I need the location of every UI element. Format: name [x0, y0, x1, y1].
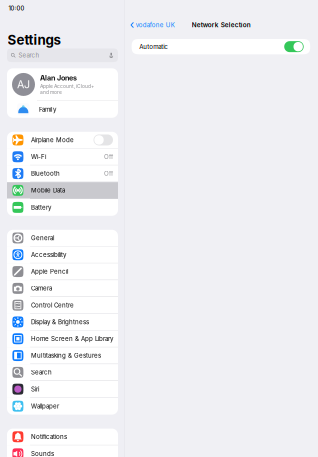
button[interactable]: Mobile Data	[7, 182, 118, 199]
staticText: Bluetooth	[31, 170, 60, 177]
button[interactable]: vodafone UK	[124, 18, 175, 32]
staticText: Off	[104, 170, 113, 177]
staticText: Mobile Data	[31, 187, 65, 194]
staticText: Multitasking & Gestures	[31, 352, 101, 359]
staticText: vodafone UK	[136, 21, 175, 29]
button[interactable]: Search	[7, 364, 118, 381]
button[interactable]: Battery	[7, 199, 118, 216]
button[interactable]: Airplane Mode	[7, 132, 118, 149]
staticText: Display & Brightness	[31, 318, 89, 326]
button[interactable]: Home Screen & App Library	[7, 331, 118, 347]
staticText: Wi-Fi	[31, 153, 46, 160]
staticText: General	[31, 234, 54, 242]
staticText: Apple Account, iCloud+	[40, 83, 94, 89]
button[interactable]: Siri	[7, 381, 118, 398]
staticText: Wallpaper	[31, 402, 59, 410]
staticText: Automatic	[139, 43, 168, 50]
staticText: Home Screen & App Library	[31, 335, 113, 342]
button[interactable]: Wi-Fi	[7, 149, 118, 165]
staticText: Camera	[31, 285, 52, 292]
staticText: Search	[31, 369, 52, 376]
staticText: Family	[39, 106, 56, 113]
staticText: 10:00	[8, 5, 24, 12]
staticText: Apple Pencil	[31, 268, 68, 275]
staticText: Airplane Mode	[31, 136, 74, 144]
staticText: Off	[104, 153, 113, 160]
button[interactable]: Notifications	[7, 429, 118, 445]
staticText: Settings	[8, 32, 61, 48]
staticText: Notifications	[31, 433, 67, 440]
button[interactable]: Camera	[7, 280, 118, 297]
staticText: Alan Jones	[40, 74, 77, 82]
button[interactable]: General	[7, 230, 118, 247]
staticText: Accessibility	[31, 251, 66, 258]
button[interactable]: Bluetooth	[7, 165, 118, 182]
button[interactable]: Wallpaper	[7, 398, 118, 415]
staticText: and more	[40, 89, 62, 95]
button[interactable]: Apple Pencil	[7, 263, 118, 280]
button[interactable]: Multitasking & Gestures	[7, 347, 118, 364]
staticText: Control Centre	[31, 301, 74, 309]
staticText: Sounds	[31, 450, 54, 457]
staticText: Siri	[31, 385, 39, 393]
button[interactable]: Accessibility	[7, 247, 118, 263]
staticText: Network Selection	[192, 21, 251, 29]
button[interactable]: Display & Brightness	[7, 314, 118, 331]
button[interactable]: Sounds	[7, 445, 118, 457]
button[interactable]: AJ	[7, 68, 118, 101]
button[interactable]: Control Centre	[7, 297, 118, 314]
staticText: Battery	[31, 204, 51, 211]
button[interactable]: Automatic	[124, 39, 318, 54]
button[interactable]: Family	[7, 101, 118, 118]
staticText: Search	[18, 52, 39, 59]
staticText: AJ	[17, 78, 30, 91]
